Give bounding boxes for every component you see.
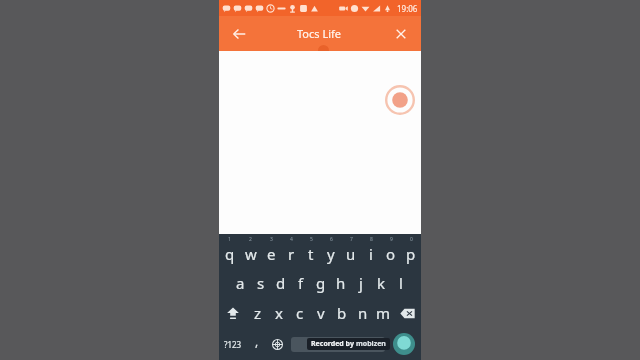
button[interactable]: n — [352, 298, 373, 328]
button[interactable]: l — [391, 268, 411, 298]
button[interactable]: 1 — [219, 234, 240, 268]
button[interactable]: Backspace — [394, 298, 421, 328]
staticText: r — [288, 244, 295, 264]
button[interactable]: 0 — [401, 234, 421, 268]
staticText: QWERTY — [326, 341, 351, 349]
button[interactable]: j — [351, 268, 371, 298]
button[interactable]: v — [310, 298, 331, 328]
staticText: Recorded by — [311, 339, 356, 349]
button[interactable]: m — [373, 298, 394, 328]
staticText: 19:06 — [397, 3, 418, 14]
staticText: n — [358, 303, 368, 323]
staticText: c — [296, 303, 304, 323]
button[interactable]: Space — [291, 337, 385, 352]
staticText: i — [369, 244, 373, 264]
staticText: d — [276, 273, 286, 293]
button[interactable]: , — [247, 328, 266, 360]
button[interactable]: 2 — [240, 234, 261, 268]
button[interactable]: z — [247, 298, 268, 328]
button[interactable]: g — [311, 268, 331, 298]
button[interactable]: ?123 — [219, 328, 247, 360]
button[interactable]: 6 — [321, 234, 341, 268]
staticText: w — [245, 244, 257, 264]
button[interactable]: Back — [227, 22, 251, 46]
staticText: j — [359, 273, 363, 293]
button[interactable]: Change language — [266, 328, 289, 360]
staticText: o — [386, 244, 396, 264]
staticText: p — [406, 244, 416, 264]
button[interactable]: 8 — [361, 234, 381, 268]
staticText: a — [236, 273, 245, 293]
staticText: 0 — [410, 236, 413, 243]
button[interactable]: k — [371, 268, 391, 298]
staticText: x — [275, 303, 283, 323]
staticText: l — [399, 273, 403, 293]
staticText: mobizen — [356, 339, 386, 349]
button[interactable]: s — [251, 268, 271, 298]
button[interactable]: c — [289, 298, 310, 328]
staticText: 7 — [350, 236, 353, 243]
staticText: m — [376, 303, 391, 323]
staticText: 2 — [249, 236, 252, 243]
staticText: e — [267, 244, 276, 264]
button[interactable]: 5 — [301, 234, 321, 268]
staticText: g — [316, 273, 326, 293]
staticText: 6 — [330, 236, 333, 243]
button[interactable]: 7 — [341, 234, 361, 268]
button[interactable]: h — [331, 268, 351, 298]
staticText: t — [308, 244, 314, 264]
staticText: s — [257, 273, 265, 293]
button[interactable]: b — [331, 298, 352, 328]
staticText: 8 — [370, 236, 373, 243]
button[interactable]: Enter — [387, 328, 421, 360]
button[interactable]: f — [291, 268, 311, 298]
staticText: z — [254, 303, 262, 323]
staticText: 5 — [310, 236, 313, 243]
button[interactable]: 4 — [281, 234, 301, 268]
staticText: k — [377, 273, 386, 293]
staticText: u — [346, 244, 356, 264]
button[interactable]: d — [271, 268, 291, 298]
button[interactable]: 9 — [381, 234, 401, 268]
staticText: ?123 — [224, 339, 242, 350]
staticText: 9 — [390, 236, 393, 243]
staticText: Tocs Life — [297, 26, 341, 41]
staticText: v — [317, 303, 325, 323]
staticText: y — [327, 244, 335, 264]
staticText: q — [225, 244, 235, 264]
button[interactable]: Close — [389, 22, 413, 46]
button[interactable]: Shift — [219, 298, 247, 328]
button[interactable]: x — [268, 298, 289, 328]
staticText: 1 — [228, 236, 231, 243]
staticText: 4 — [290, 236, 293, 243]
staticText: 3 — [270, 236, 273, 243]
button[interactable]: 3 — [261, 234, 281, 268]
staticText: b — [337, 303, 347, 323]
staticText: h — [336, 273, 346, 293]
staticText: , — [255, 333, 259, 349]
staticText: f — [298, 273, 304, 293]
button[interactable]: a — [230, 268, 251, 298]
